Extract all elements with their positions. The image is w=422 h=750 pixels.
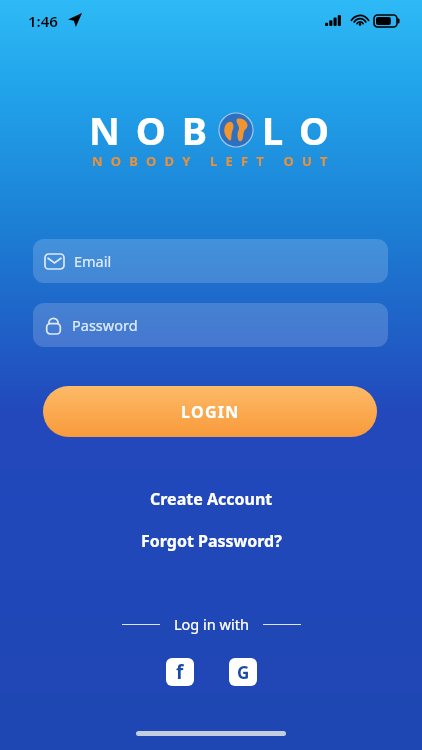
staticText: LOGIN [181, 401, 240, 423]
staticText: 1:46 [28, 11, 58, 31]
button[interactable]: Password [33, 303, 388, 347]
staticText: f [176, 659, 184, 685]
staticText: Password [72, 315, 138, 335]
staticText: N O B [89, 104, 210, 156]
staticText: L O [262, 104, 333, 156]
staticText: Email [74, 251, 112, 271]
staticText: G [237, 661, 250, 684]
staticText: N O B O D Y L E F T O U T [0, 152, 422, 170]
button[interactable]: Forgot Password? [0, 529, 422, 553]
staticText: Log in with [174, 614, 249, 634]
staticText: Create Account [150, 488, 273, 510]
staticText: Forgot Password? [141, 530, 282, 552]
button[interactable]: LOGIN [43, 386, 377, 437]
button[interactable]: Email [33, 239, 388, 283]
button[interactable]: Log in with Google [229, 658, 257, 686]
button[interactable]: Log in with Facebook [166, 658, 194, 686]
button[interactable]: Create Account [0, 487, 422, 511]
